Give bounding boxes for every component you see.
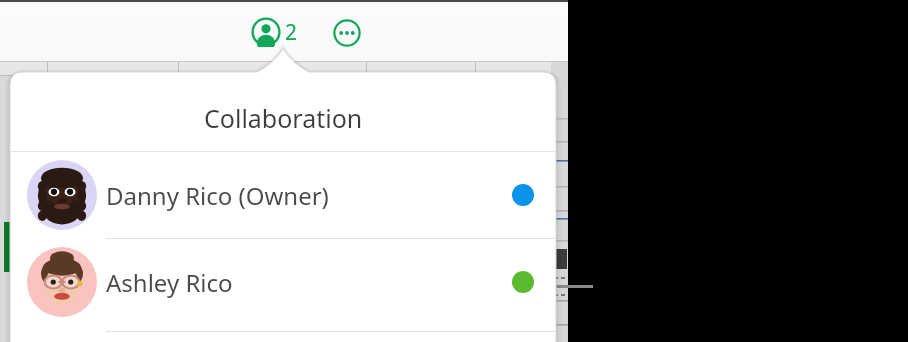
staticText: 2 <box>285 18 298 47</box>
button[interactable]: Collaborators <box>251 17 294 47</box>
other: Collaborators <box>251 17 281 47</box>
button[interactable]: More options <box>333 19 361 47</box>
button[interactable]: Danny Rico (Owner) <box>11 152 556 238</box>
staticText: Collaboration <box>204 101 363 135</box>
staticText: Ashley Rico <box>106 266 466 299</box>
staticText: Danny Rico (Owner) <box>106 179 466 212</box>
button[interactable]: Ashley Rico <box>11 239 556 325</box>
